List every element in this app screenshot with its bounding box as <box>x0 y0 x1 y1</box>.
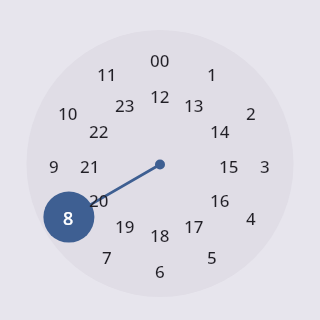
staticText: 13 <box>184 94 204 117</box>
staticText: 7 <box>102 246 112 269</box>
button[interactable]: 6 <box>140 251 180 291</box>
staticText: 6 <box>155 260 165 283</box>
staticText: 5 <box>207 246 217 269</box>
button[interactable]: 18 <box>140 215 180 255</box>
staticText: 9 <box>49 155 59 178</box>
staticText: 2 <box>246 102 256 125</box>
button[interactable]: 5 <box>192 237 232 277</box>
button[interactable]: 21 <box>70 146 110 186</box>
staticText: 17 <box>184 215 204 238</box>
button[interactable]: 10 <box>48 93 88 133</box>
button[interactable]: 1 <box>192 54 232 94</box>
staticText: 3 <box>260 155 270 178</box>
staticText: 8 <box>63 206 74 231</box>
button[interactable]: 19 <box>105 206 145 246</box>
button[interactable]: 3 <box>245 146 285 186</box>
staticText: 11 <box>97 63 117 86</box>
staticText: 4 <box>246 207 256 230</box>
button[interactable]: 17 <box>174 206 214 246</box>
button[interactable]: 8 <box>48 198 88 238</box>
button[interactable]: 2 <box>231 93 271 133</box>
staticText: 23 <box>115 94 135 117</box>
staticText: 14 <box>210 120 230 143</box>
staticText: 12 <box>150 85 170 108</box>
staticText: 19 <box>115 215 135 238</box>
staticText: 22 <box>89 120 109 143</box>
staticText: 20 <box>89 189 109 212</box>
staticText: 18 <box>150 224 170 247</box>
button[interactable]: 12 <box>140 76 180 116</box>
button[interactable]: 23 <box>105 85 145 125</box>
staticText: 16 <box>210 189 230 212</box>
button[interactable]: 7 <box>87 237 127 277</box>
staticText: 1 <box>207 63 217 86</box>
button[interactable]: 14 <box>200 111 240 151</box>
staticText: 15 <box>219 155 239 178</box>
button[interactable]: 00 <box>140 40 180 80</box>
button[interactable]: 9 <box>34 146 74 186</box>
button[interactable]: 13 <box>174 85 214 125</box>
staticText: 00 <box>150 49 170 72</box>
button[interactable]: 22 <box>79 111 119 151</box>
button[interactable]: 11 <box>87 54 127 94</box>
button[interactable]: 4 <box>231 198 271 238</box>
button[interactable]: 15 <box>209 146 249 186</box>
staticText: 10 <box>58 102 78 125</box>
button[interactable]: 20 <box>79 180 119 220</box>
button[interactable]: 16 <box>200 180 240 220</box>
staticText: 21 <box>80 155 100 178</box>
